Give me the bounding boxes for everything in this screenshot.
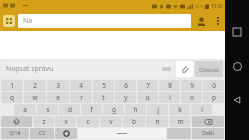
button[interactable]: 6 [115,80,136,91]
button[interactable]: Odeslat [195,61,223,77]
button[interactable]: p [203,92,224,103]
staticText: 3 [56,81,60,90]
button[interactable]: d [59,104,80,115]
staticText: s [46,105,50,114]
staticText: n [155,117,160,126]
staticText: j [157,105,159,114]
button[interactable]: n [146,116,168,127]
staticText: p [212,93,216,102]
button[interactable]: Space [78,128,166,139]
staticText: m [177,117,184,126]
staticText: v [109,117,113,126]
staticText: Na [23,16,33,26]
button[interactable]: 7 [137,80,158,91]
staticText: c [86,117,90,126]
button[interactable]: Home [227,56,247,76]
button[interactable]: Key [192,116,224,127]
staticText: o [190,93,194,102]
staticText: r [80,93,83,102]
button[interactable]: Back [227,90,247,110]
button[interactable]: t [93,92,114,103]
staticText: CS [39,130,45,137]
staticText: g [112,105,116,114]
button[interactable]: Napsat zprávu [2,61,174,77]
button[interactable]: k [169,104,190,115]
staticText: 8 [168,81,172,90]
staticText: k [178,105,182,114]
button[interactable]: i [159,92,180,103]
button[interactable]: Attach [176,61,193,77]
button[interactable]: r [70,92,92,103]
button[interactable]: 0 [203,80,224,91]
button[interactable]: m [169,116,191,127]
button[interactable]: 3 [47,80,69,91]
button[interactable]: h [125,104,146,115]
button[interactable]: q [1,92,23,103]
staticText: 9 [190,81,194,90]
button[interactable]: e [47,92,69,103]
staticText: f [90,105,93,114]
button[interactable]: a [14,104,36,115]
staticText: 7 [146,81,150,90]
button[interactable]: 4 [70,80,92,91]
button[interactable]: 8 [159,80,180,91]
button[interactable]: Contacts [191,11,211,31]
staticText: 2 [33,81,37,90]
button[interactable]: f [81,104,102,115]
button[interactable]: Key [55,128,77,139]
button[interactable]: u [137,92,158,103]
staticText: Odeslat [199,66,219,73]
button[interactable]: c [77,116,99,127]
button[interactable]: w [24,92,46,103]
button[interactable]: z [33,116,54,127]
staticText: d [68,105,72,114]
staticText: u [145,93,150,102]
staticText: 0 [212,81,216,90]
staticText: 5 [102,81,106,90]
staticText: z [42,117,46,126]
staticText: 6 [124,81,128,90]
staticText: i [169,93,171,102]
staticText: h [133,105,138,114]
staticText: 4 [79,81,83,90]
button[interactable]: Apps [3,15,15,27]
staticText: 53 % [195,4,203,9]
staticText: b [132,117,136,126]
button[interactable]: Key [1,116,32,127]
button[interactable]: l [191,104,212,115]
staticText: t [102,93,105,102]
button[interactable]: Key [192,128,224,139]
button[interactable]: o [181,92,202,103]
staticText: x [64,117,68,126]
staticText: y [124,93,128,102]
staticText: l [201,105,203,114]
staticText: 1 [10,81,14,90]
button[interactable]: Recents [227,22,247,42]
button[interactable]: b [123,116,145,127]
button[interactable]: Key [30,128,54,139]
button[interactable]: Na [18,14,191,28]
button[interactable]: 9 [181,80,202,91]
staticText: 15:30 [211,3,223,9]
staticText: . [178,130,180,137]
button[interactable]: j [147,104,168,115]
button[interactable]: v [100,116,122,127]
staticText: w [32,93,38,102]
staticText: Další [202,130,214,137]
staticText: ☺1# [9,130,21,137]
staticText: q [10,93,14,102]
button[interactable]: s [37,104,58,115]
button[interactable]: More options [211,14,225,28]
button[interactable]: x [55,116,76,127]
button[interactable]: 2 [24,80,46,91]
button[interactable]: g [103,104,124,115]
button[interactable]: 1 [1,80,23,91]
button[interactable]: y [115,92,136,103]
staticText: a [23,105,27,114]
button[interactable]: Key [1,128,29,139]
staticText: Napsat zprávu [6,64,54,74]
button[interactable]: 5 [93,80,114,91]
staticText: e [56,93,60,102]
